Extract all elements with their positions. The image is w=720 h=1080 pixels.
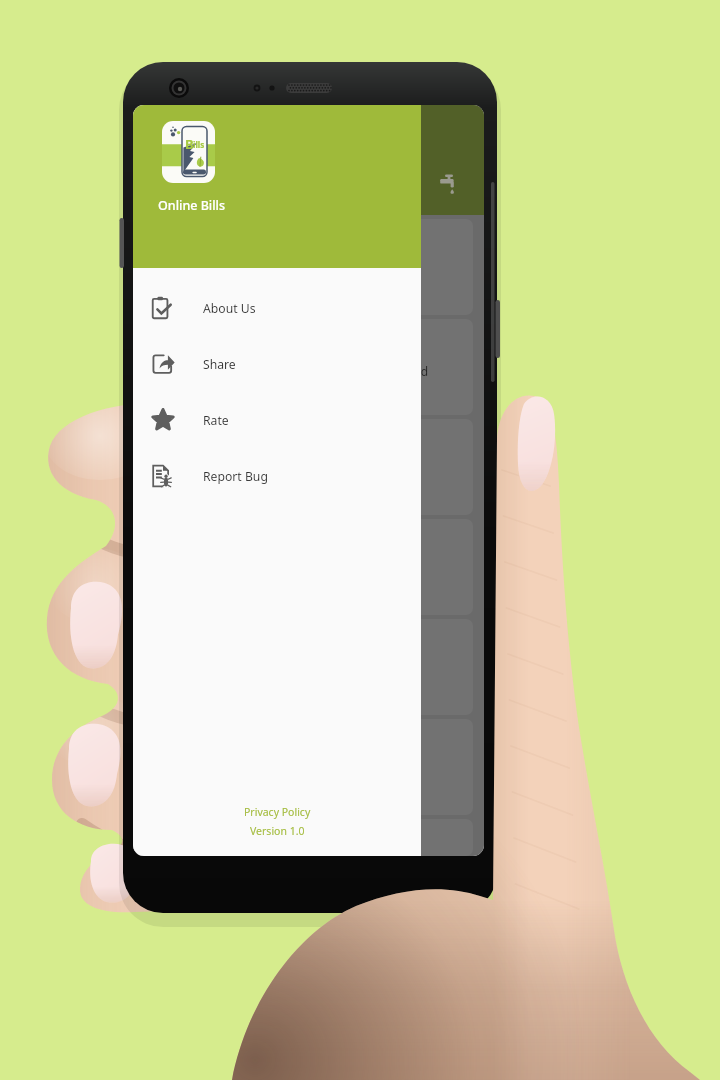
button[interactable]: Share [133,336,421,392]
button[interactable]: Water bill [428,162,472,206]
button[interactable] [144,819,473,856]
button[interactable]: Report Bug [133,448,421,504]
button[interactable] [144,419,473,515]
staticText: Rate [203,412,229,429]
staticText: Online Bills [158,197,226,214]
button[interactable] [144,519,473,615]
staticText: Report Bug [203,468,268,485]
staticText: ills [193,139,205,150]
button[interactable] [144,719,473,815]
staticText: Water Supply Limited [308,363,429,379]
staticText: About Us [203,300,256,317]
button[interactable]: Privacy Policy [244,805,311,819]
staticText: Share [203,356,236,373]
button[interactable]: About Us [133,280,421,336]
staticText: Version 1.0 [250,824,305,838]
staticText: B [185,135,194,153]
button[interactable] [144,619,473,715]
button[interactable]: Water Supply Limited [144,319,473,415]
button[interactable] [144,219,473,315]
button[interactable]: Rate [133,392,421,448]
